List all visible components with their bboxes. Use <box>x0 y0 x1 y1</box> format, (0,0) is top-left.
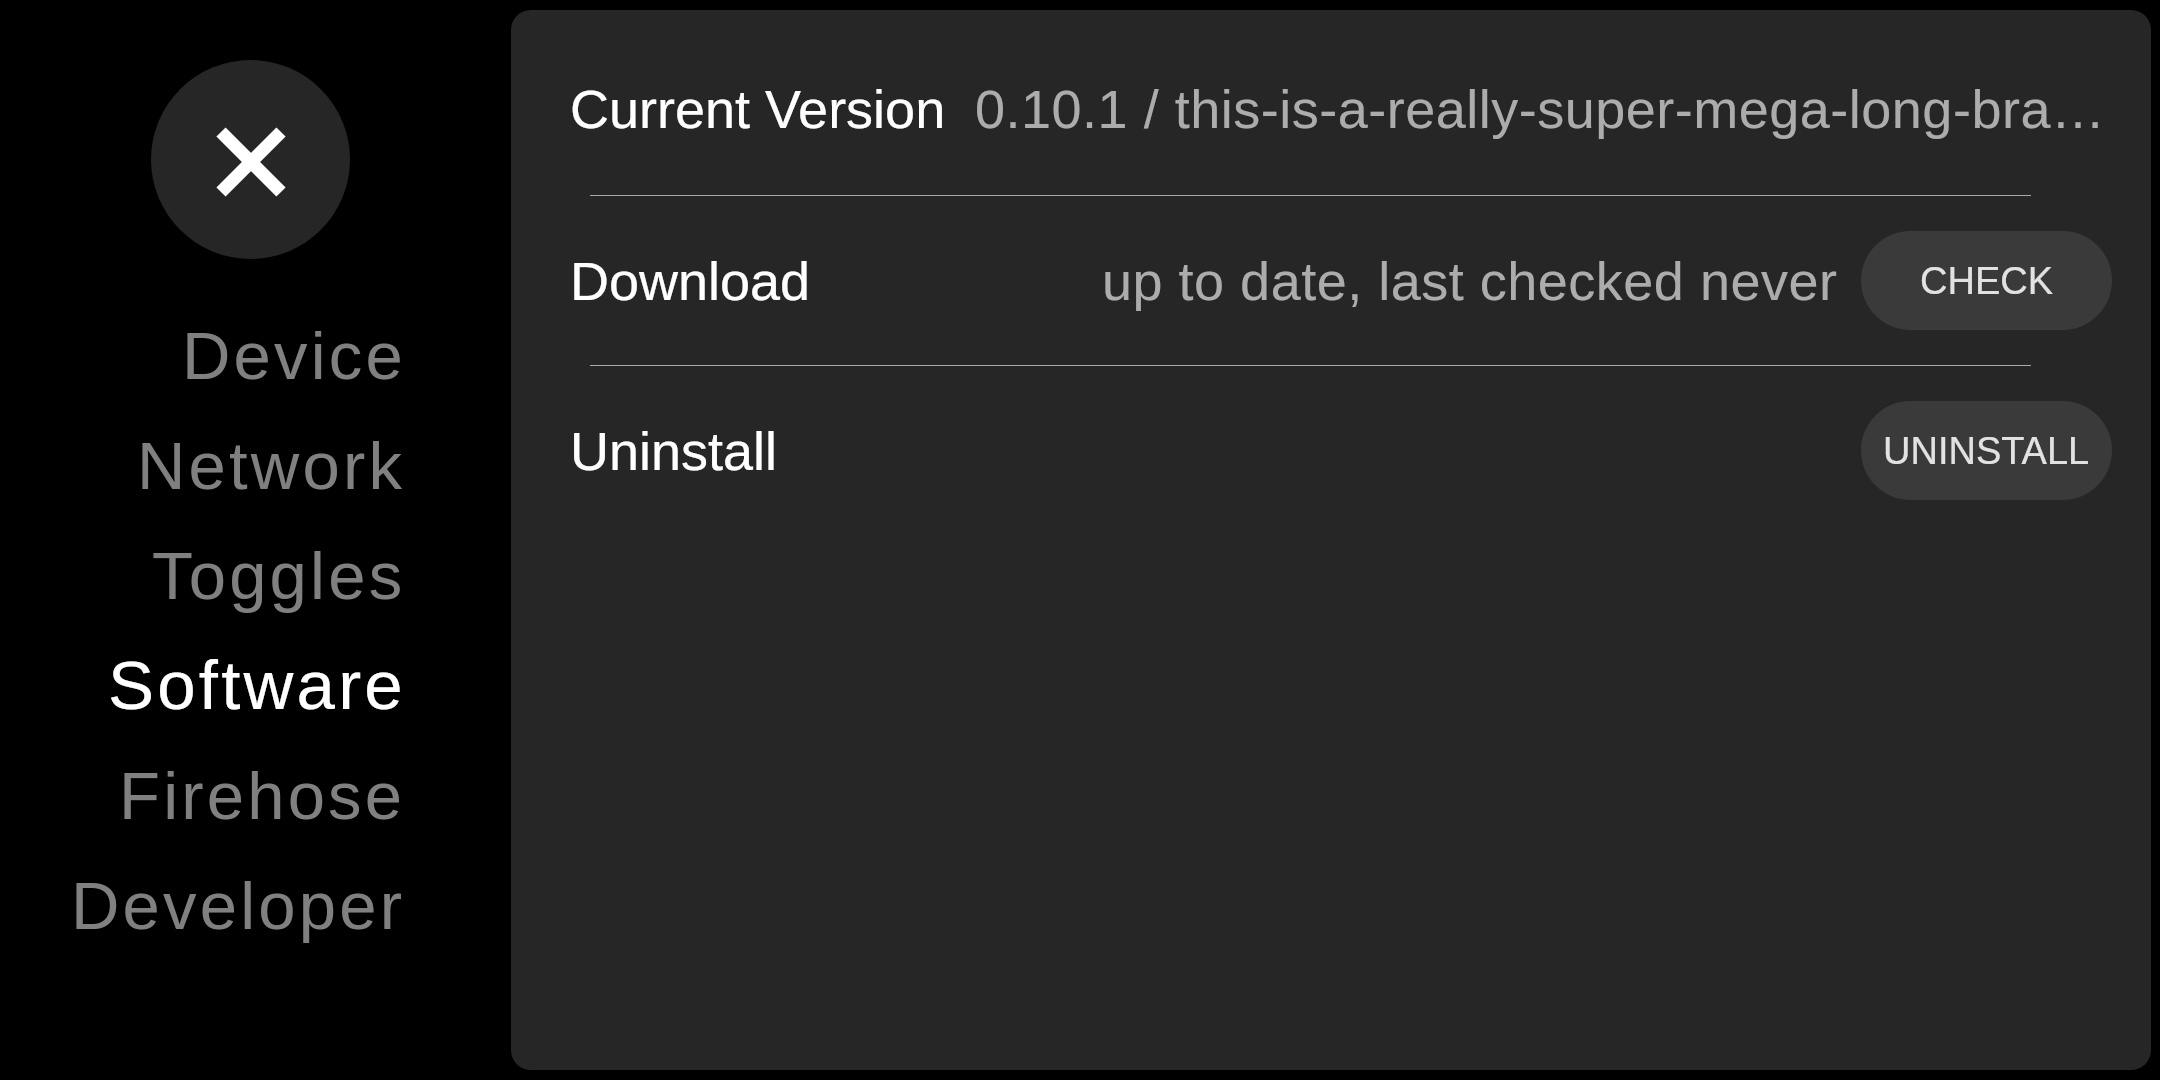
button[interactable]: Network <box>0 410 406 520</box>
button[interactable]: Firehose <box>0 740 406 850</box>
button[interactable]: Developer <box>0 850 406 960</box>
staticText: UNINSTALL <box>1883 430 2090 472</box>
staticText: Current Version <box>570 79 946 139</box>
button[interactable]: CHECK <box>1861 231 2112 330</box>
staticText: 0.10.1 / this-is-a-really-super-mega-lon… <box>975 79 2110 139</box>
button[interactable]: UNINSTALL <box>1861 401 2112 500</box>
button[interactable]: Current Version <box>511 23 2151 195</box>
staticText: Uninstall <box>570 421 778 481</box>
button[interactable]: Close <box>151 60 350 259</box>
staticText: Download <box>570 251 811 311</box>
button[interactable]: Software <box>0 630 406 740</box>
button[interactable]: Download <box>511 196 2151 365</box>
staticText: Software <box>108 647 406 724</box>
staticText: Firehose <box>119 758 406 833</box>
button[interactable]: Toggles <box>0 520 406 630</box>
staticText: CHECK <box>1920 260 2054 302</box>
staticText: Device <box>182 318 406 393</box>
staticText: up to date, last checked never <box>1102 251 1838 311</box>
staticText: Network <box>137 428 406 503</box>
staticText: Developer <box>71 868 406 943</box>
button[interactable]: Uninstall <box>511 366 2151 535</box>
staticText: Toggles <box>152 538 406 613</box>
button[interactable]: Device <box>0 300 406 410</box>
